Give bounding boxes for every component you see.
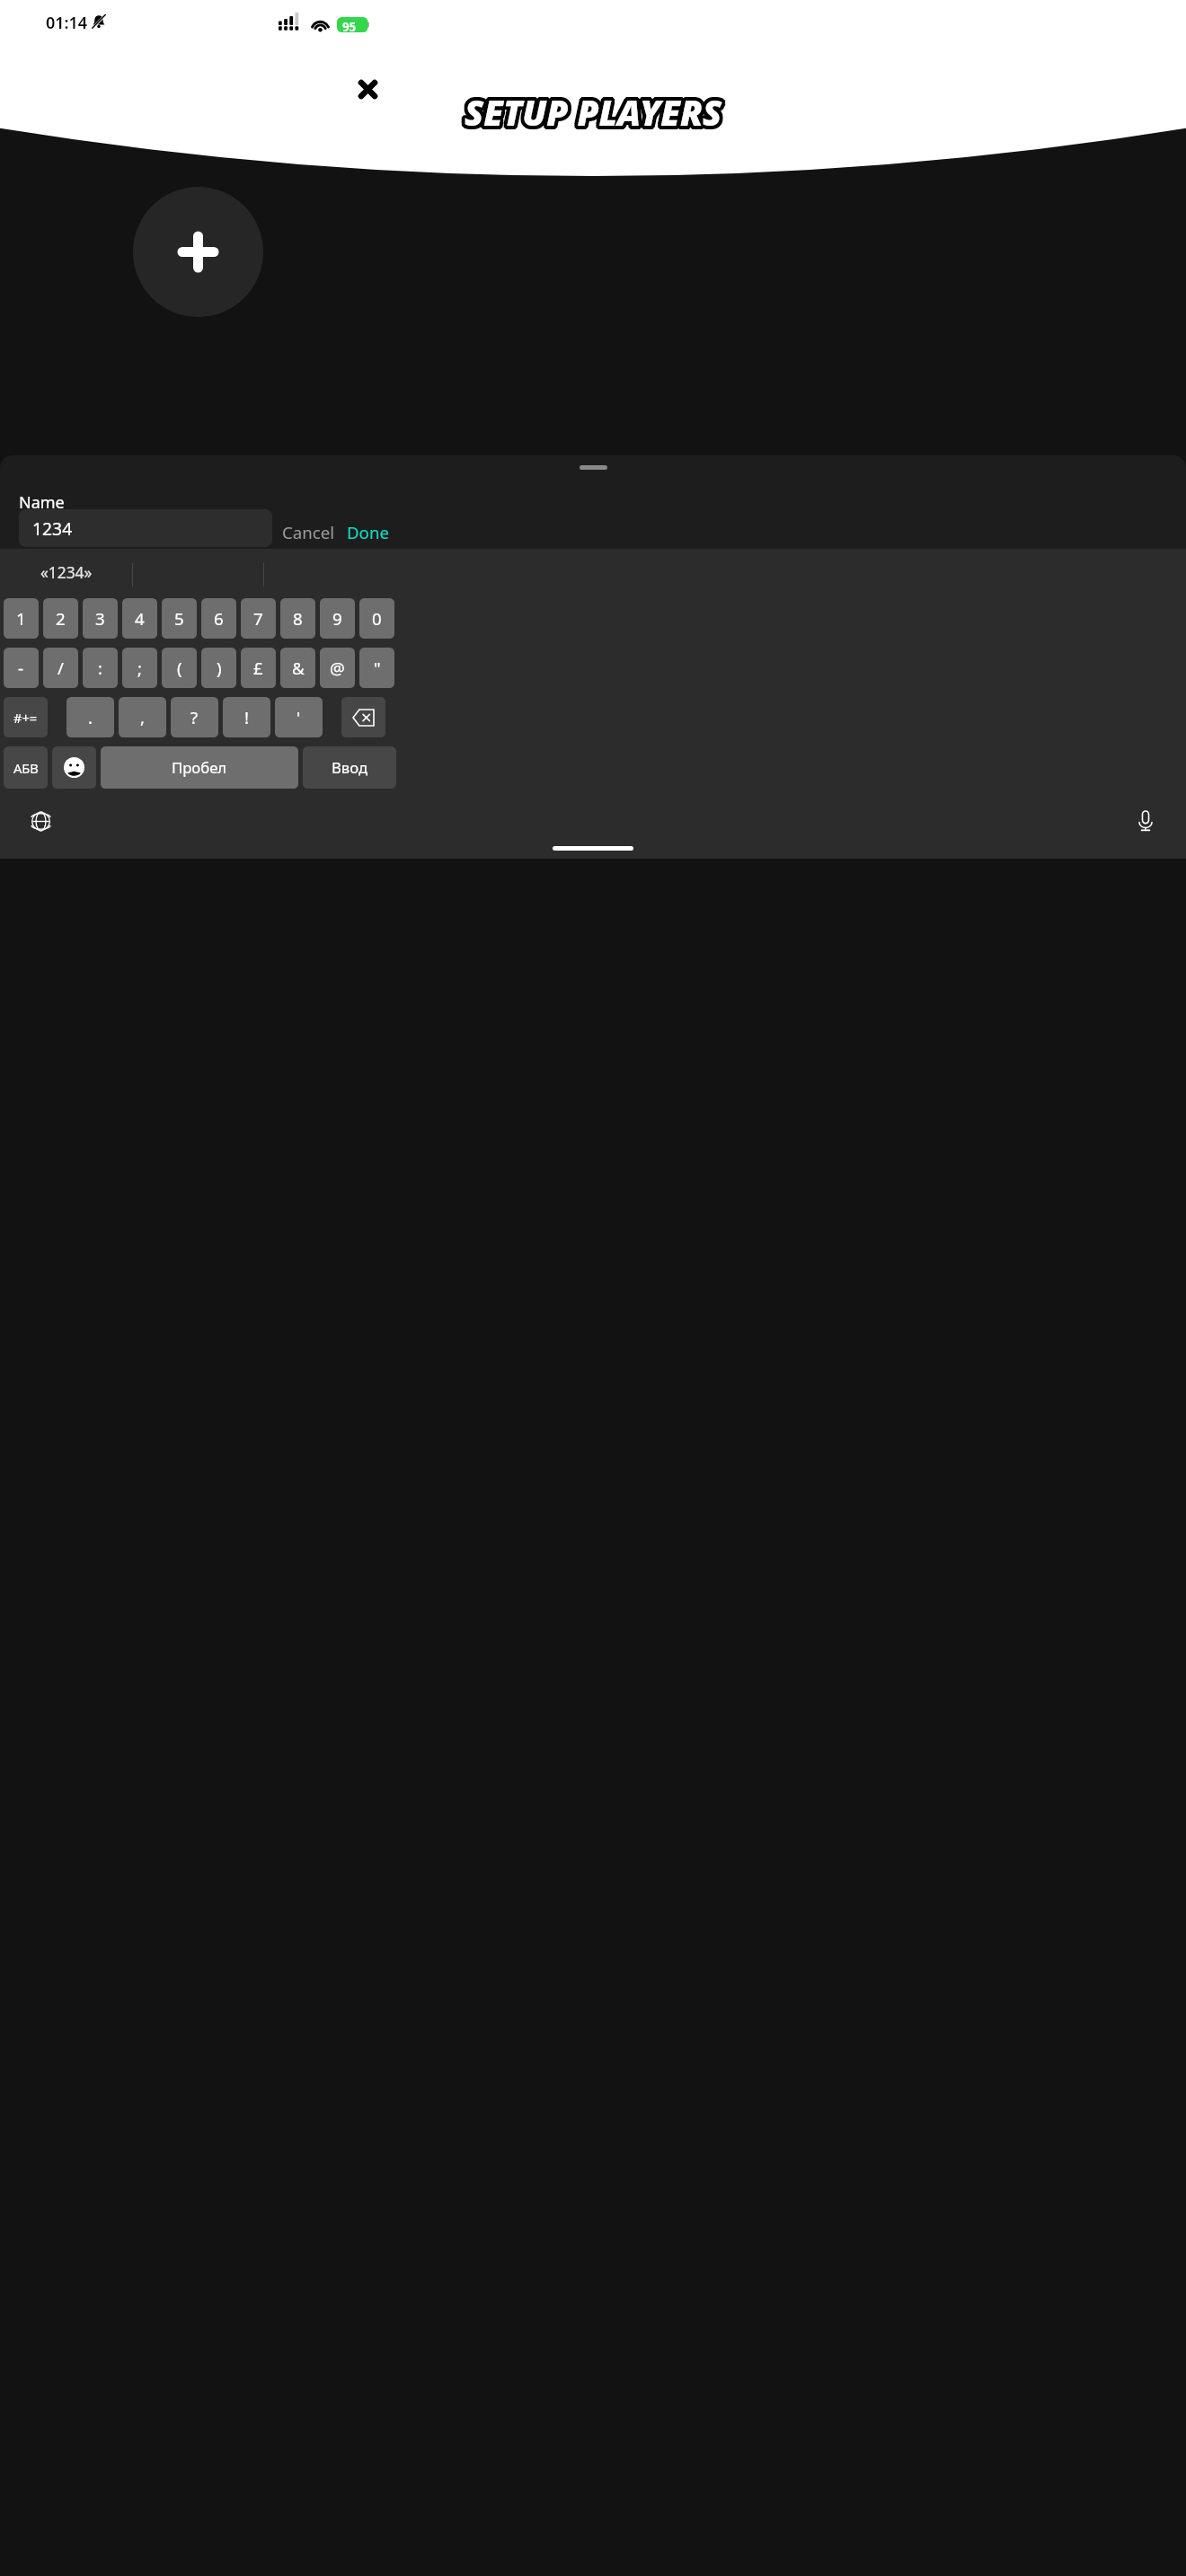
button[interactable]: 6: [201, 598, 236, 639]
button[interactable]: 5: [162, 598, 197, 639]
button[interactable]: #+=: [4, 697, 48, 737]
staticText: ,: [140, 706, 145, 728]
staticText: 5: [174, 607, 184, 630]
staticText: Done: [347, 521, 389, 543]
staticText: Пробел: [172, 757, 227, 778]
staticText: Cancel: [282, 521, 335, 543]
button[interactable]: 3: [83, 598, 118, 639]
staticText: SETUP PLAYERS: [468, 87, 726, 135]
button[interactable]: &: [280, 648, 315, 688]
staticText: 4: [135, 607, 145, 630]
staticText: Ввод: [332, 757, 368, 778]
button[interactable]: 1: [4, 598, 39, 639]
staticText: &: [292, 657, 305, 679]
button[interactable]: АБВ: [4, 746, 48, 789]
staticText: SETUP PLAYERS: [465, 93, 722, 140]
button[interactable]: ?: [171, 697, 218, 737]
staticText: #+=: [13, 709, 38, 727]
staticText: (: [177, 657, 182, 679]
staticText: /: [58, 657, 64, 679]
button[interactable]: Emoji: [52, 746, 96, 789]
staticText: 6: [214, 607, 224, 630]
staticText: -: [18, 657, 24, 679]
staticText: SETUP PLAYERS: [463, 85, 721, 133]
staticText: SETUP PLAYERS: [461, 91, 719, 138]
staticText: ": [374, 657, 381, 679]
staticText: SETUP PLAYERS: [462, 86, 720, 134]
staticText: 01:14: [46, 12, 88, 34]
button[interactable]: :: [83, 648, 118, 688]
button[interactable]: Пробел: [101, 746, 298, 789]
staticText: SETUP PLAYERS: [461, 89, 719, 137]
staticText: 1: [16, 607, 26, 630]
staticText: 1234: [32, 516, 73, 540]
staticText: SETUP PLAYERS: [466, 93, 724, 140]
button[interactable]: ): [201, 648, 236, 688]
button[interactable]: ,: [119, 697, 166, 737]
staticText: ?: [190, 706, 199, 728]
button[interactable]: -: [4, 648, 39, 688]
staticText: 3: [95, 607, 105, 630]
button[interactable]: (: [162, 648, 197, 688]
staticText: SETUP PLAYERS: [465, 85, 722, 133]
staticText: !: [244, 706, 250, 728]
staticText: SETUP PLAYERS: [468, 91, 726, 138]
staticText: SETUP PLAYERS: [468, 89, 726, 137]
staticText: @: [330, 657, 345, 679]
staticText: ': [296, 706, 301, 728]
button[interactable]: ': [275, 697, 323, 737]
staticText: 2: [56, 607, 66, 630]
staticText: 0: [372, 607, 382, 630]
staticText: 9: [332, 607, 342, 630]
button[interactable]: @: [320, 648, 355, 688]
button[interactable]: ": [359, 648, 394, 688]
button[interactable]: Add player: [133, 187, 263, 317]
button[interactable]: 2: [43, 598, 78, 639]
staticText: ): [217, 657, 222, 679]
staticText: АБВ: [13, 759, 39, 777]
staticText: SETUP PLAYERS: [461, 87, 719, 135]
button[interactable]: Voice input: [1132, 807, 1159, 834]
staticText: SETUP PLAYERS: [465, 89, 722, 137]
button[interactable]: 0: [359, 598, 394, 639]
button[interactable]: !: [223, 697, 270, 737]
button[interactable]: £: [241, 648, 276, 688]
button[interactable]: 9: [320, 598, 355, 639]
button[interactable]: .: [66, 697, 114, 737]
staticText: SETUP PLAYERS: [467, 92, 725, 139]
staticText: 95: [342, 19, 357, 35]
button[interactable]: 1234: [19, 509, 272, 547]
staticText: 8: [293, 607, 303, 630]
button[interactable]: Cancel: [279, 517, 339, 547]
staticText: :: [98, 657, 102, 679]
staticText: ;: [137, 657, 142, 679]
button[interactable]: 8: [280, 598, 315, 639]
staticText: Name: [19, 491, 65, 514]
staticText: SETUP PLAYERS: [462, 92, 720, 139]
staticText: 7: [253, 607, 263, 630]
staticText: «1234»: [40, 561, 93, 583]
staticText: £: [253, 657, 263, 679]
button[interactable]: Change language: [27, 807, 54, 834]
button[interactable]: 4: [122, 598, 157, 639]
button[interactable]: 7: [241, 598, 276, 639]
button[interactable]: Done: [343, 517, 393, 547]
staticText: .: [88, 706, 93, 728]
staticText: SETUP PLAYERS: [463, 93, 721, 140]
button[interactable]: ;: [122, 648, 157, 688]
button[interactable]: «1234»: [36, 557, 97, 587]
button[interactable]: Close: [349, 70, 387, 109]
button[interactable]: Ввод: [303, 746, 396, 789]
button[interactable]: Backspace: [341, 697, 385, 737]
staticText: SETUP PLAYERS: [467, 86, 725, 134]
staticText: SETUP PLAYERS: [466, 85, 724, 133]
button[interactable]: /: [43, 648, 78, 688]
